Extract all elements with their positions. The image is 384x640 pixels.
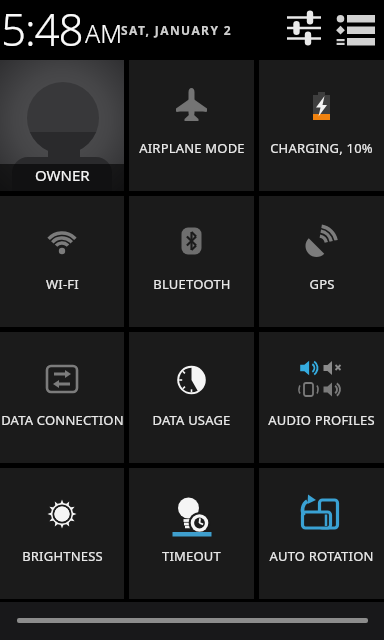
staticText: AM — [85, 16, 123, 50]
staticText: TIMEOUT — [162, 547, 221, 565]
staticText: WI-FI — [46, 275, 79, 293]
staticText: AUTO ROTATION — [269, 547, 374, 565]
staticText: AIRPLANE MODE — [139, 139, 245, 157]
staticText: BRIGHTNESS — [22, 547, 103, 565]
staticText: SAT, JANUARY 2 — [121, 22, 233, 38]
staticText: CHARGING, 10% — [270, 139, 373, 157]
staticText: BLUETOOTH — [153, 275, 231, 293]
staticText: DATA CONNECTION — [1, 411, 124, 429]
staticText: 5:48 — [1, 0, 83, 59]
staticText: OWNER — [35, 165, 90, 185]
staticText: GPS — [309, 275, 335, 293]
staticText: DATA USAGE — [152, 411, 231, 429]
staticText: AUDIO PROFILES — [268, 411, 375, 429]
